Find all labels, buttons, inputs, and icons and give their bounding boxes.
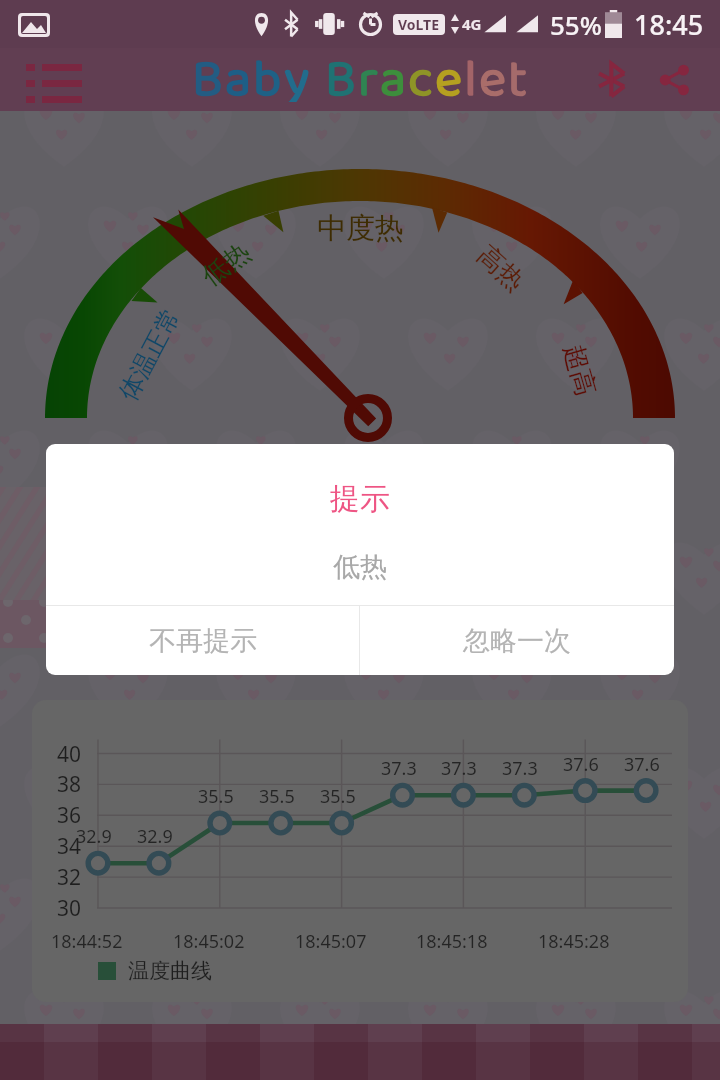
staticText: 温度曲线 bbox=[128, 958, 212, 984]
staticText: 低热 bbox=[46, 550, 674, 584]
staticText: 37.3 bbox=[502, 756, 538, 781]
staticText: 忽略一次 bbox=[463, 624, 571, 658]
staticText: 提示 bbox=[46, 480, 674, 518]
staticText: B bbox=[325, 39, 358, 102]
staticText: 18:45 bbox=[634, 6, 704, 43]
staticText: 低热 bbox=[196, 236, 257, 293]
staticText: 高热 bbox=[470, 239, 531, 298]
staticText: 18:45:02 bbox=[173, 929, 245, 954]
staticText: 35.5 bbox=[198, 784, 234, 809]
staticText: 超高 bbox=[556, 341, 603, 400]
staticText: 37.6 bbox=[563, 752, 599, 777]
staticText: 35.5 bbox=[320, 784, 356, 809]
staticText: 18:45:18 bbox=[416, 929, 488, 954]
staticText: 55% bbox=[550, 7, 602, 42]
staticText: l bbox=[464, 39, 479, 102]
staticText: 37.3 bbox=[381, 756, 417, 781]
staticText: a bbox=[380, 39, 408, 102]
staticText: 40 bbox=[57, 740, 82, 769]
staticText: y bbox=[284, 39, 312, 102]
button[interactable]: 不再提示 bbox=[46, 606, 359, 675]
button[interactable]: Menu bbox=[22, 58, 78, 102]
staticText: 32 bbox=[57, 863, 82, 892]
staticText: 体温正常 bbox=[112, 303, 187, 406]
staticText: a bbox=[225, 39, 253, 102]
staticText: 18:45:28 bbox=[538, 929, 610, 954]
button[interactable]: Bluetooth bbox=[586, 54, 638, 106]
staticText: c bbox=[408, 39, 435, 102]
staticText: e bbox=[479, 39, 508, 102]
staticText: 18:44:52 bbox=[51, 929, 123, 954]
staticText: 37.3 bbox=[441, 756, 477, 781]
staticText: 32.9 bbox=[137, 824, 173, 849]
staticText: 4G bbox=[462, 14, 482, 34]
staticText: 36 bbox=[57, 801, 82, 830]
staticText: 34 bbox=[57, 832, 82, 861]
staticText: 37.6 bbox=[624, 752, 660, 777]
staticText: r bbox=[358, 39, 380, 102]
staticText: 32.9 bbox=[76, 824, 112, 849]
button[interactable]: Share bbox=[648, 54, 700, 106]
staticText: B bbox=[192, 39, 225, 102]
staticText: VoLTE bbox=[398, 15, 440, 34]
staticText: 18:45:07 bbox=[295, 929, 367, 954]
button[interactable]: 忽略一次 bbox=[360, 606, 674, 675]
staticText: 38 bbox=[57, 770, 82, 799]
staticText: 中度热 bbox=[317, 210, 404, 247]
staticText: 不再提示 bbox=[149, 624, 257, 658]
staticText: b bbox=[253, 39, 284, 102]
staticText: 30 bbox=[57, 894, 82, 923]
staticText: e bbox=[435, 39, 464, 102]
staticText: t bbox=[508, 39, 529, 102]
staticText: 35.5 bbox=[259, 784, 295, 809]
